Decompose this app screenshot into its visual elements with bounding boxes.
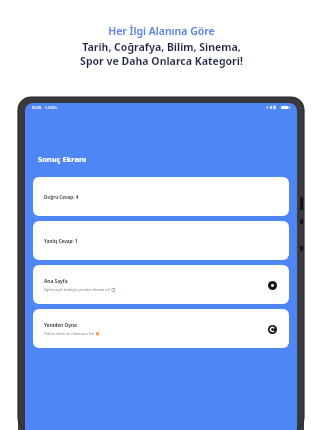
button[interactable]: Yeniden Oyna	[33, 309, 289, 348]
staticText: 01:45	[32, 105, 42, 110]
staticText: Tarih, Coğrafya, Bilim, Sinema,	[82, 40, 241, 54]
staticText: Yanlış Cevap: 1	[44, 238, 78, 244]
button[interactable]: Ana Sayfa	[33, 265, 289, 304]
button[interactable]: Ana Sayfa	[266, 279, 278, 291]
staticText: Doğru Cevap: 4	[44, 194, 79, 200]
button[interactable]: Yeniden Oyna	[266, 323, 278, 335]
staticText: Ana Sayfa	[44, 278, 68, 285]
staticText: Sonuç Ekranı	[38, 154, 87, 164]
button[interactable]: Yanlış Cevap: 1	[33, 221, 289, 260]
staticText: 2.5KB/s	[45, 105, 57, 110]
staticText: Spor ve Daha Onlarca Kategori!	[80, 54, 243, 68]
staticText: Yeniden Oyna	[44, 322, 77, 329]
staticText: Tekrar dene ve rekorunu kır! 🔥	[44, 331, 101, 336]
staticText: Her İlgi Alanına Göre	[108, 24, 215, 38]
button[interactable]: Doğru Cevap: 4	[33, 177, 289, 216]
staticText: Eğlenceyle kaldığın yerden devam et! 📋	[44, 287, 116, 292]
